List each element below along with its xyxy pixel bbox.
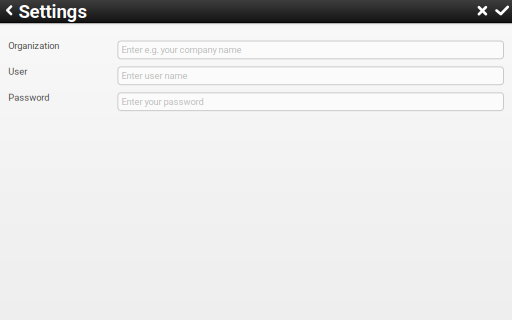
staticText: Password bbox=[8, 92, 49, 103]
button[interactable]: Enter your password bbox=[118, 93, 503, 111]
staticText: Settings bbox=[19, 1, 88, 22]
button[interactable]: Cancel bbox=[472, 0, 487, 23]
staticText: User bbox=[8, 66, 27, 77]
staticText: Enter your password bbox=[121, 96, 203, 107]
button[interactable]: Save bbox=[487, 0, 512, 23]
staticText: Organization bbox=[8, 40, 59, 51]
staticText: Enter user name bbox=[121, 70, 187, 81]
button[interactable]: Enter user name bbox=[118, 67, 503, 85]
button[interactable]: Settings bbox=[0, 0, 95, 23]
button[interactable]: Enter e.g. your company name bbox=[118, 41, 503, 59]
staticText: Enter e.g. your company name bbox=[121, 44, 241, 55]
